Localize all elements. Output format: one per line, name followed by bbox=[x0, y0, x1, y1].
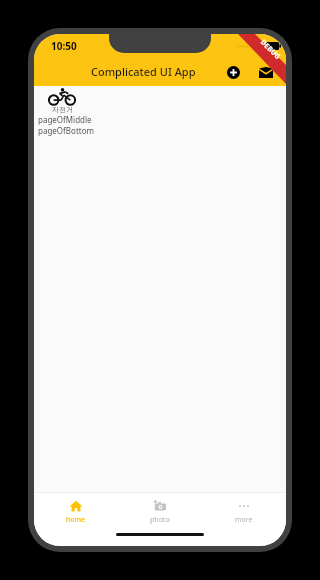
staticText: home bbox=[66, 515, 86, 525]
button[interactable]: Add bbox=[222, 61, 244, 83]
staticText: photo bbox=[150, 515, 170, 525]
staticText: pageOfBottom bbox=[38, 125, 94, 136]
staticText: more bbox=[235, 515, 253, 525]
staticText: pageOfMiddle bbox=[38, 114, 92, 125]
button[interactable]: more bbox=[202, 493, 286, 531]
staticText: DEBUG bbox=[258, 38, 283, 62]
button[interactable]: photo bbox=[118, 493, 202, 531]
button[interactable]: home bbox=[34, 493, 118, 531]
button[interactable]: 자전거 bbox=[38, 88, 86, 114]
staticText: 10:50 bbox=[51, 39, 77, 53]
staticText: Complicated UI App bbox=[91, 64, 196, 79]
staticText: 자전거 bbox=[52, 105, 73, 114]
button[interactable]: Mail bbox=[255, 61, 277, 83]
